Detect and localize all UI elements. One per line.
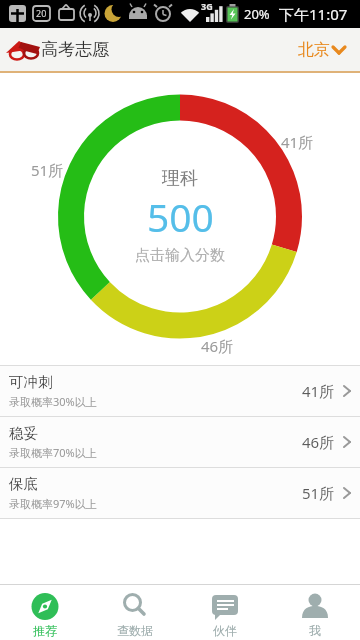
- staticText: 500: [147, 190, 214, 242]
- staticText: 录取概率97%以上: [9, 496, 97, 511]
- button[interactable]: 北京: [298, 40, 348, 60]
- staticText: 北京: [298, 40, 330, 60]
- button[interactable]: 伙伴: [180, 585, 270, 640]
- staticText: 伙伴: [213, 623, 237, 638]
- staticText: 20%: [244, 5, 270, 23]
- staticText: 3G: [201, 0, 213, 12]
- staticText: 点击输入分数: [135, 246, 225, 265]
- button[interactable]: 稳妥: [0, 417, 360, 467]
- button[interactable]: 理科: [0, 73, 360, 365]
- staticText: 录取概率30%以上: [9, 394, 97, 409]
- staticText: 41所: [281, 132, 314, 152]
- staticText: 下午11:07: [279, 4, 348, 24]
- staticText: 稳妥: [9, 424, 38, 442]
- button[interactable]: 查数据: [90, 585, 180, 640]
- staticText: 录取概率70%以上: [9, 445, 97, 460]
- staticText: 46所: [302, 432, 335, 452]
- staticText: 20: [36, 7, 47, 19]
- button[interactable]: 推荐: [0, 585, 90, 640]
- staticText: 我: [309, 623, 321, 638]
- button[interactable]: 我: [270, 585, 360, 640]
- staticText: 保底: [9, 475, 38, 493]
- button[interactable]: 可冲刺: [0, 366, 360, 416]
- staticText: 46所: [201, 336, 234, 356]
- staticText: 查数据: [117, 623, 153, 638]
- staticText: 51所: [31, 160, 64, 180]
- staticText: 理科: [162, 167, 198, 190]
- staticText: 可冲刺: [9, 373, 53, 391]
- staticText: 推荐: [33, 623, 57, 638]
- button[interactable]: 保底: [0, 468, 360, 518]
- staticText: 41所: [302, 381, 335, 401]
- staticText: 高考志愿: [41, 39, 109, 60]
- staticText: 51所: [302, 483, 335, 503]
